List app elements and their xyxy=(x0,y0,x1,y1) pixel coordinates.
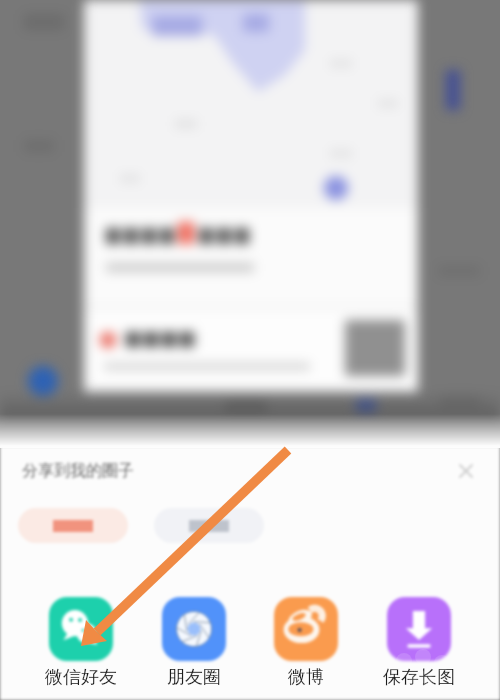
staticText: 微博 xyxy=(288,666,324,689)
button[interactable] xyxy=(35,593,127,691)
button[interactable] xyxy=(148,593,240,691)
button[interactable] xyxy=(18,508,128,543)
staticText: 朋友圈 xyxy=(167,666,221,689)
button[interactable]: Close xyxy=(454,459,478,483)
button[interactable] xyxy=(260,593,352,691)
button[interactable] xyxy=(154,508,264,543)
staticText: 保存长图 xyxy=(383,666,455,689)
staticText: 分享到我的圈子 xyxy=(22,461,134,481)
staticText: 微信好友 xyxy=(45,666,117,689)
button[interactable] xyxy=(373,593,465,691)
